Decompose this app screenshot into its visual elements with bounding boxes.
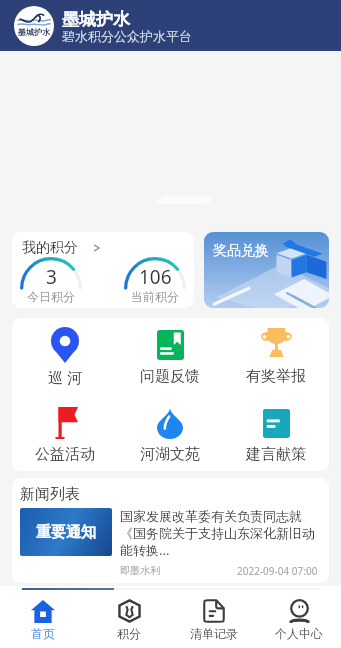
- staticText: 巡 河: [48, 367, 82, 387]
- staticText: 我的积分: [22, 239, 78, 257]
- staticText: 有奖举报: [246, 367, 306, 386]
- staticText: 国家发展改革委有关负责同志就《国务院关于支持山东深化新旧动能转换...: [120, 508, 318, 559]
- button[interactable]: 奖品兑换: [204, 232, 329, 308]
- button[interactable]: 问题反馈: [117, 326, 223, 386]
- button[interactable]: 个人中心: [256, 599, 341, 641]
- staticText: 墨城护水: [62, 9, 130, 30]
- staticText: 首页: [31, 626, 55, 641]
- button[interactable]: 公益活动: [12, 404, 117, 464]
- staticText: 重要通知: [36, 523, 96, 542]
- staticText: 2022-09-04 07:00: [237, 564, 318, 578]
- staticText: 奖品兑换: [213, 242, 269, 260]
- staticText: 当前积分: [131, 289, 179, 304]
- staticText: 建言献策: [246, 445, 306, 464]
- staticText: 3: [46, 264, 57, 288]
- staticText: 问题反馈: [140, 367, 200, 386]
- staticText: 106: [139, 264, 172, 288]
- staticText: 清单记录: [190, 626, 238, 641]
- staticText: 今日积分: [27, 289, 75, 304]
- staticText: 个人中心: [275, 626, 323, 641]
- button[interactable]: 重要通知: [20, 508, 318, 578]
- staticText: 新闻列表: [20, 485, 80, 504]
- staticText: 碧水积分公众护水平台: [62, 28, 192, 44]
- button[interactable]: 我的积分: [12, 232, 194, 308]
- staticText: 积分: [117, 626, 141, 641]
- button[interactable]: 巡 河: [12, 326, 117, 387]
- button[interactable]: 河湖文苑: [117, 404, 223, 464]
- staticText: 公益活动: [35, 445, 95, 464]
- staticText: 即墨水利: [120, 564, 160, 577]
- staticText: 墨城护水: [18, 27, 50, 37]
- button[interactable]: 建言献策: [223, 404, 329, 464]
- button[interactable]: 积分: [86, 599, 171, 641]
- button[interactable]: 有奖举报: [223, 326, 329, 386]
- button[interactable]: 清单记录: [171, 599, 256, 641]
- staticText: 河湖文苑: [140, 445, 200, 464]
- button[interactable]: 首页: [0, 599, 86, 641]
